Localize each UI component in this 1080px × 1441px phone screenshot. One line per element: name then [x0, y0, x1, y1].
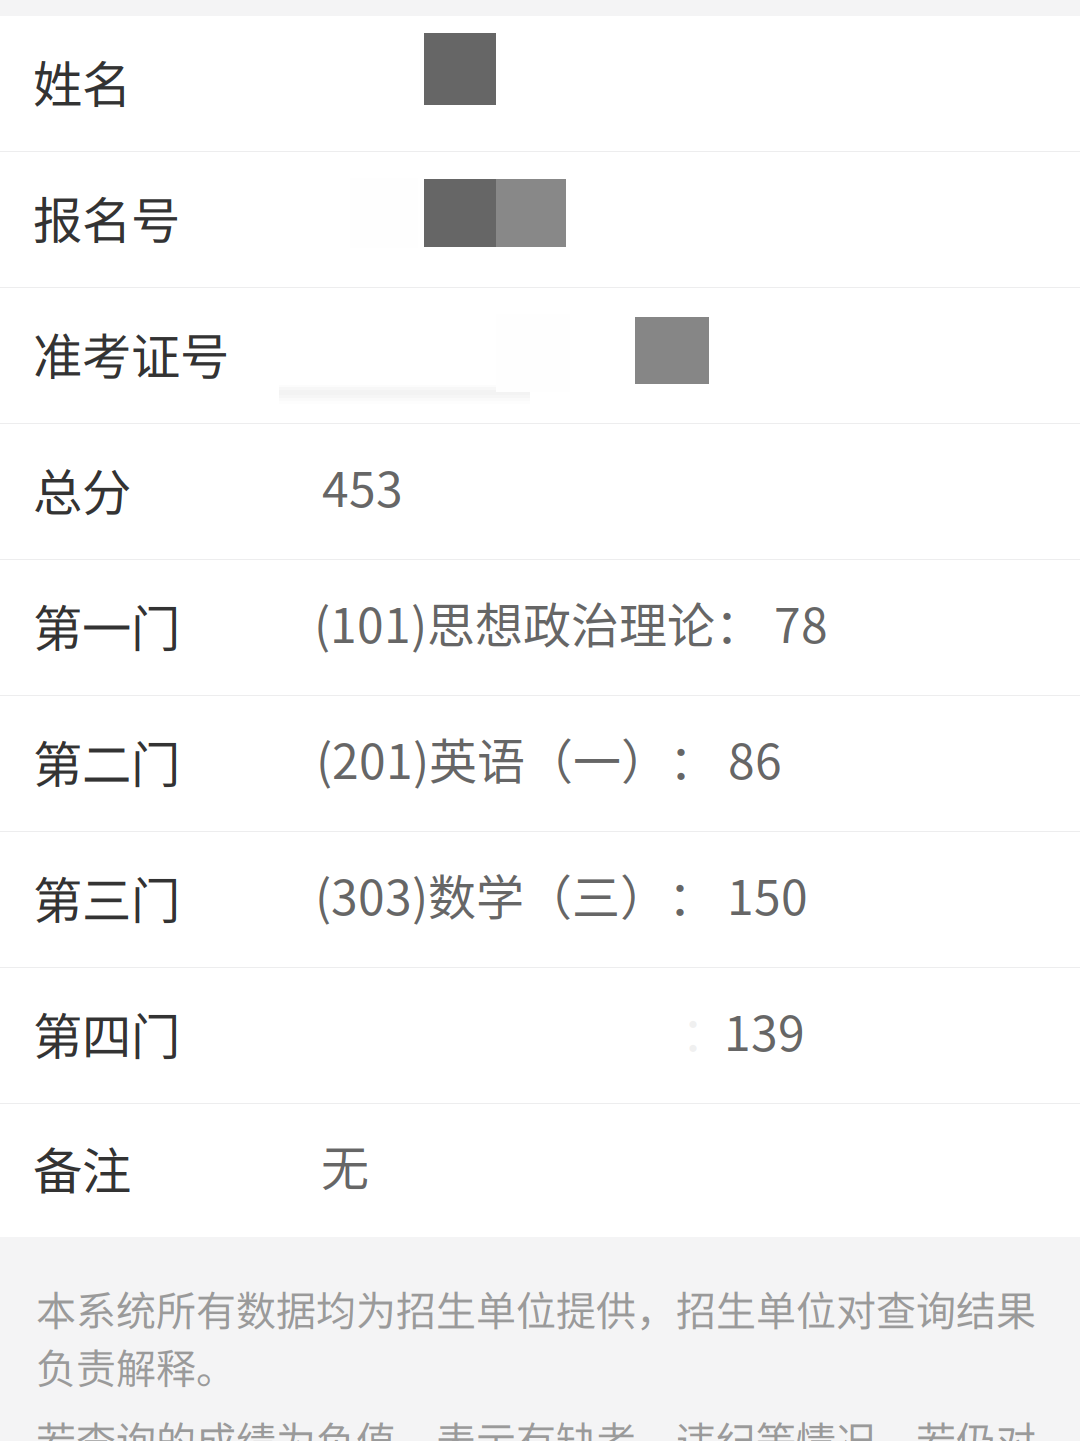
- staticText: 第四门: [33, 997, 180, 1069]
- staticText: (303)数学（三）： 150: [315, 859, 808, 929]
- staticText: 若查询的成绩为负值，表示有缺考、违纪等情况，若仍对: [36, 1410, 1036, 1441]
- staticText: (201)英语（一）： 86: [316, 723, 782, 793]
- button[interactable]: 姓名: [0, 16, 1080, 152]
- button[interactable]: 第四门: [0, 968, 1080, 1104]
- button[interactable]: 报名号: [0, 152, 1080, 288]
- staticText: 总分: [33, 453, 131, 525]
- button[interactable]: 备注: [0, 1104, 1080, 1237]
- staticText: 第三门: [33, 861, 180, 933]
- staticText: (101)思想政治理论： 78: [314, 587, 828, 657]
- staticText: 本系统所有数据均为招生单位提供，招生单位对查询结果负责解释。: [36, 1279, 1036, 1395]
- button[interactable]: 准考证号: [0, 288, 1080, 424]
- staticText: ：: [681, 995, 729, 1065]
- staticText: 报名号: [33, 181, 180, 253]
- staticText: 139: [724, 995, 805, 1065]
- staticText: 准考证号: [33, 317, 229, 389]
- staticText: 备注: [33, 1132, 131, 1203]
- button[interactable]: 第一门: [0, 560, 1080, 696]
- button[interactable]: 第二门: [0, 696, 1080, 832]
- staticText: 第二门: [33, 725, 180, 797]
- staticText: 姓名: [33, 45, 131, 117]
- staticText: 第一门: [33, 589, 180, 661]
- button[interactable]: 第三门: [0, 832, 1080, 968]
- button[interactable]: 总分: [0, 424, 1080, 560]
- staticText: 无: [321, 1130, 369, 1199]
- staticText: 453: [322, 451, 403, 521]
